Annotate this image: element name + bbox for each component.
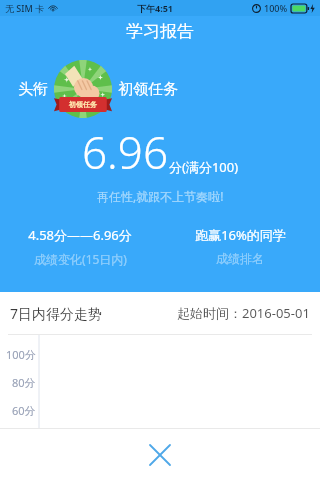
staticText: 60分 [12,403,36,418]
staticText: 再任性,就跟不上节奏啦! [97,188,224,204]
staticText: 成绩排名 [216,251,264,266]
staticText: 100分 [6,347,36,362]
staticText: 成绩变化(15日内) [34,251,127,267]
staticText: 100% [264,2,288,14]
staticText: 起始时间：2016-05-01 [177,304,310,322]
staticText: 初领任务 [118,80,178,99]
button[interactable]: 4.58分——6.96分 [0,226,160,267]
staticText: 学习报告 [126,21,194,42]
button[interactable]: 关闭 [143,438,177,472]
staticText: 初领任务 [69,100,97,109]
staticText: 80分 [12,375,36,390]
staticText: 无 SIM 卡 [5,2,45,14]
staticText: 头衔 [18,80,48,99]
staticText: 4.58分——6.96分 [28,226,132,244]
button[interactable]: 跑赢16%的同学 [160,226,320,266]
staticText: 下午4:51 [137,2,173,14]
staticText: 6.96 [82,122,169,182]
staticText: 分(满分100) [169,158,239,176]
staticText: 跑赢16%的同学 [195,226,286,244]
staticText: 7日内得分走势 [10,304,103,323]
